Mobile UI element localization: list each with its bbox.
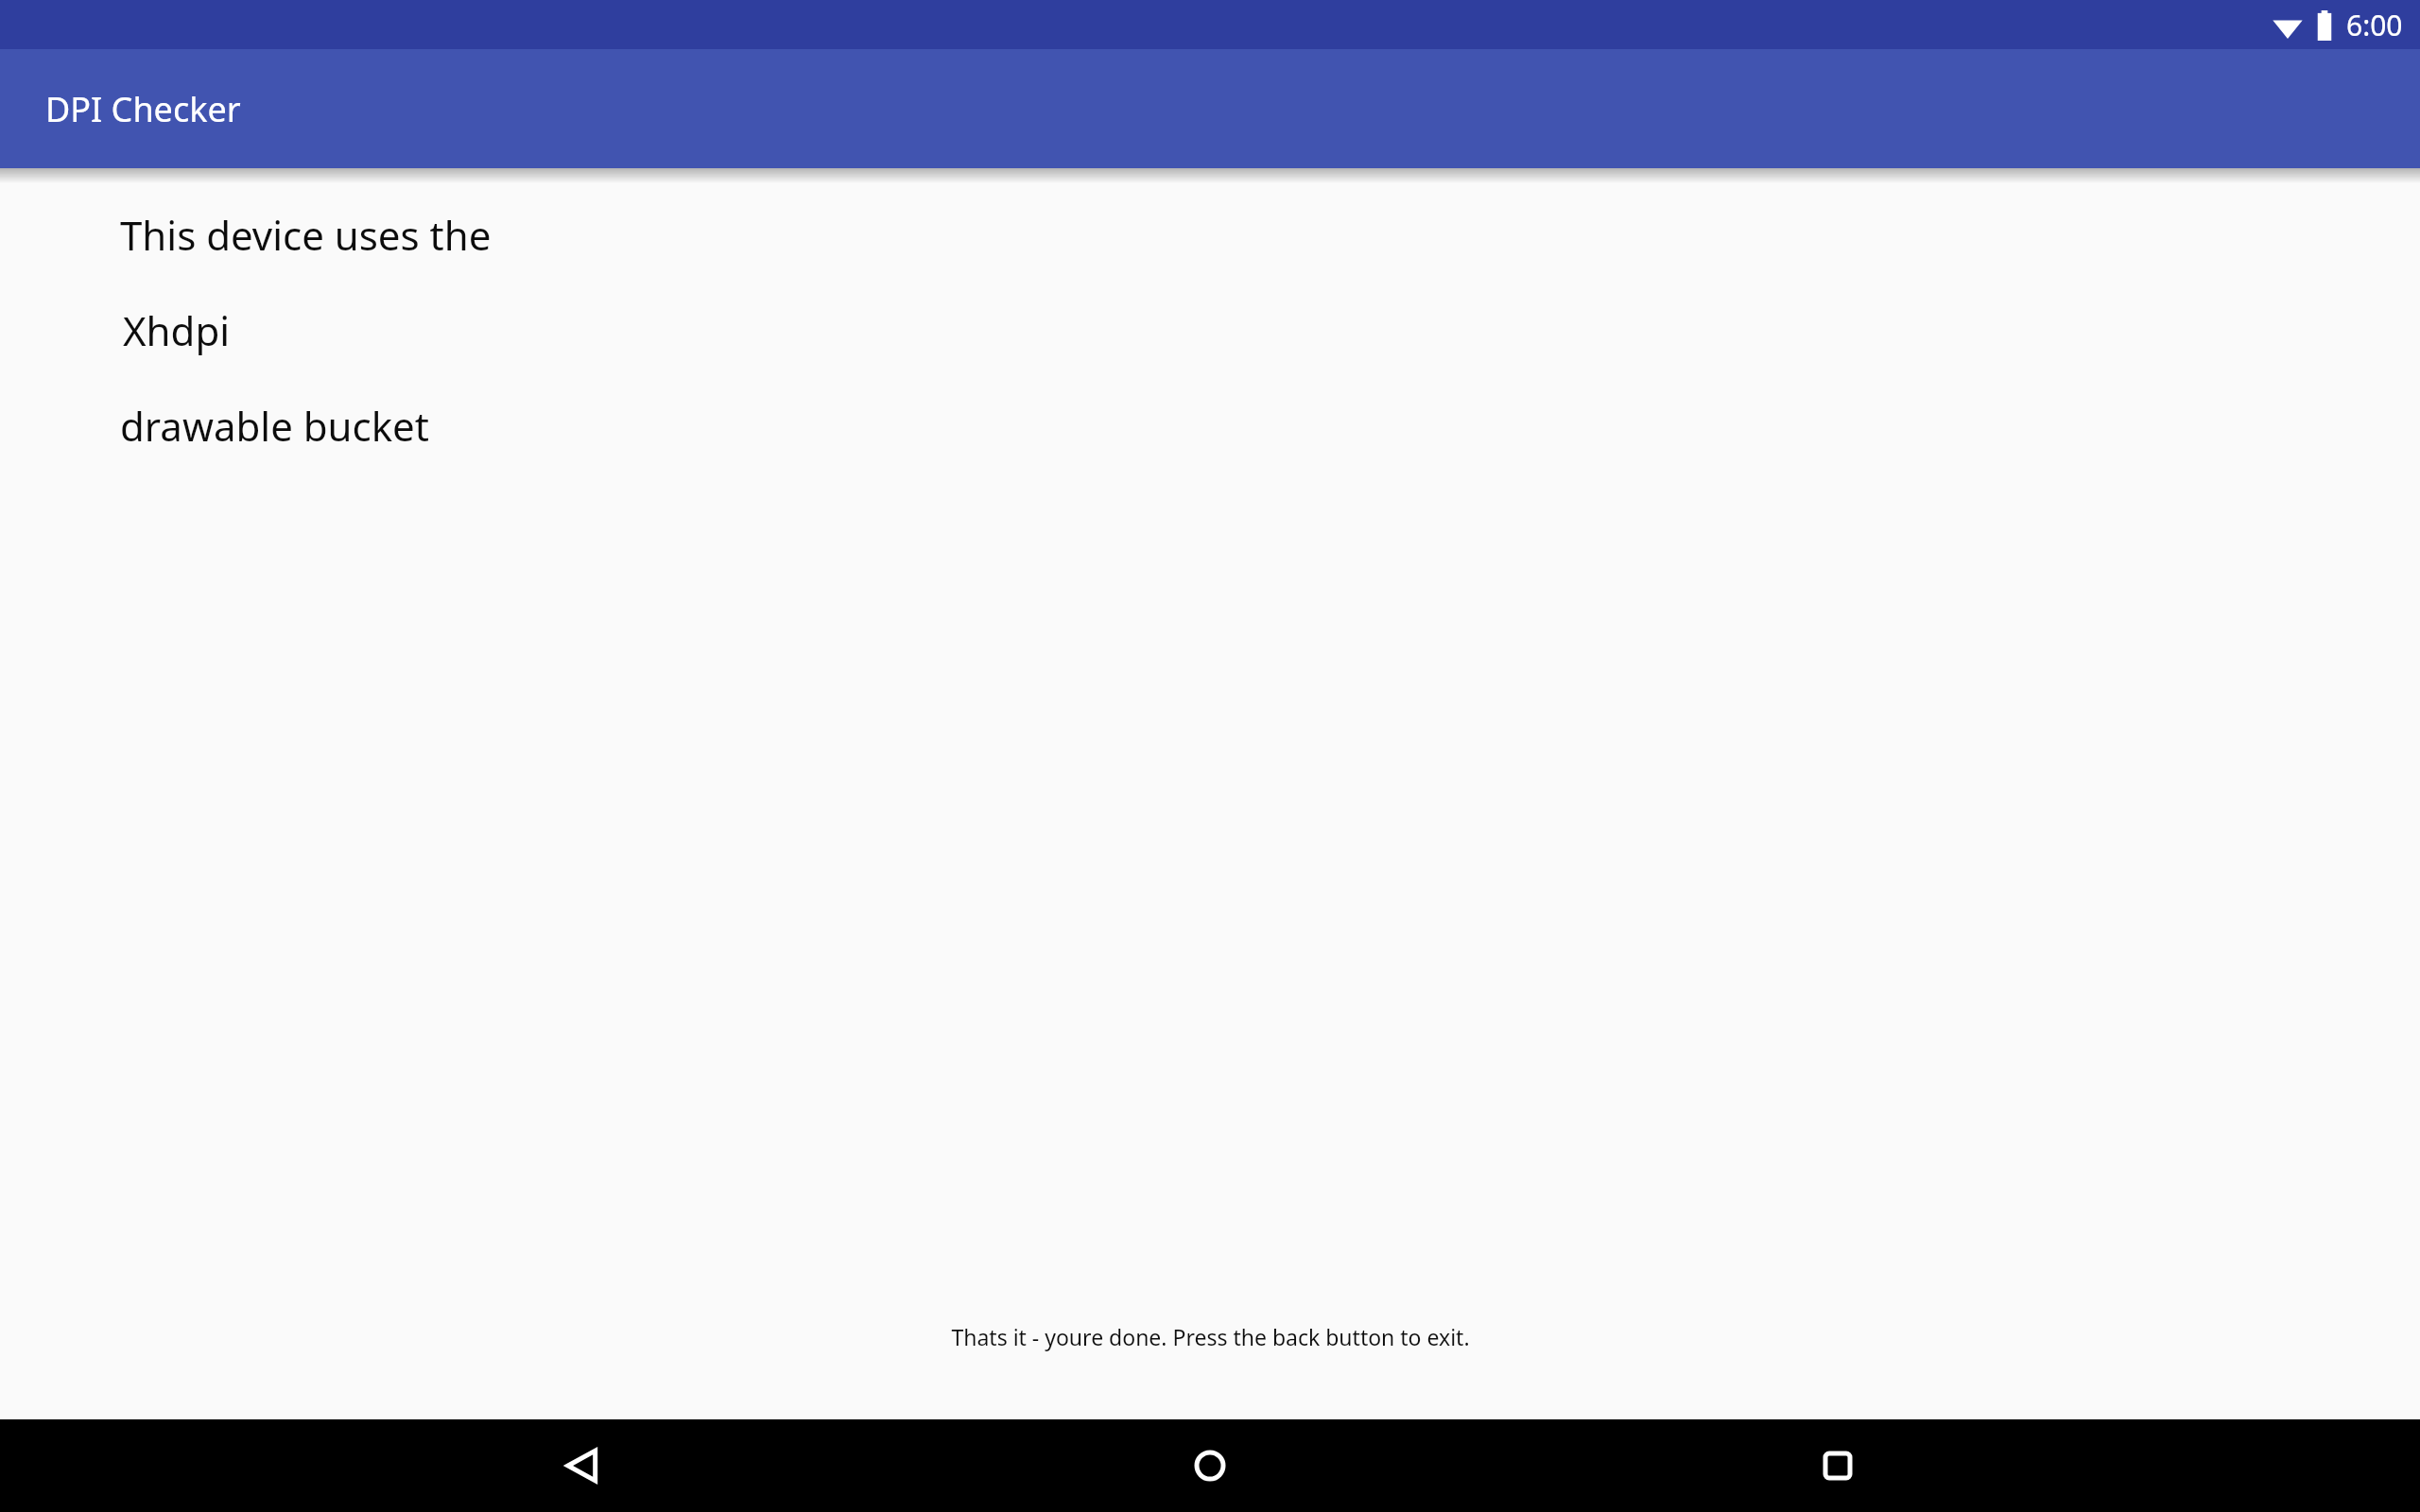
- staticText: Thats it - youre done. Press the back bu…: [951, 1322, 1470, 1351]
- staticText: Xhdpi: [123, 303, 231, 357]
- button[interactable]: Home: [1165, 1420, 1255, 1511]
- button[interactable]: Back: [537, 1420, 628, 1511]
- staticText: This device uses the: [120, 208, 492, 262]
- staticText: DPI Checker: [45, 86, 241, 132]
- staticText: 6:00: [2346, 6, 2403, 44]
- button[interactable]: DPI Checker: [0, 49, 2420, 168]
- staticText: drawable bucket: [120, 399, 429, 453]
- button[interactable]: Recent apps: [1792, 1420, 1883, 1511]
